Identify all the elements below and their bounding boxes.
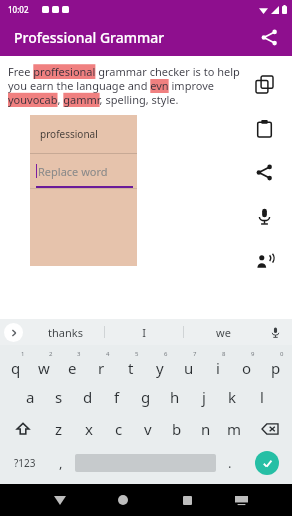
button[interactable]: Copy bbox=[242, 62, 286, 106]
staticText: k bbox=[228, 387, 237, 407]
button[interactable]: s bbox=[44, 381, 73, 413]
button[interactable]: Paste bbox=[242, 106, 286, 150]
button[interactable]: f bbox=[102, 381, 131, 413]
staticText: y bbox=[156, 358, 164, 378]
button[interactable]: Share bbox=[242, 150, 286, 194]
button[interactable]: 5 bbox=[116, 349, 145, 381]
button[interactable]: Back bbox=[28, 484, 91, 516]
staticText: i bbox=[216, 358, 220, 378]
button[interactable]: Voice input bbox=[242, 194, 286, 238]
button[interactable]: professional bbox=[30, 115, 137, 153]
staticText: Replace word bbox=[38, 164, 108, 179]
staticText: t bbox=[128, 358, 134, 378]
staticText: l bbox=[260, 387, 264, 407]
staticText: o bbox=[242, 358, 252, 378]
button[interactable]: x bbox=[74, 413, 104, 445]
staticText: p bbox=[271, 358, 281, 378]
staticText: q bbox=[11, 358, 21, 378]
button[interactable]: b bbox=[162, 413, 191, 445]
button[interactable]: Speak text bbox=[242, 238, 286, 282]
button[interactable]: More suggestions bbox=[4, 323, 23, 342]
staticText: , bbox=[59, 454, 63, 472]
staticText: 8 bbox=[222, 350, 226, 358]
button[interactable]: 4 bbox=[87, 349, 116, 381]
staticText: 4 bbox=[106, 350, 110, 358]
staticText: thanks bbox=[48, 325, 83, 340]
button[interactable]: n bbox=[191, 413, 220, 445]
staticText: g bbox=[141, 387, 151, 407]
button[interactable]: k bbox=[218, 381, 247, 413]
staticText: ?123 bbox=[14, 456, 36, 470]
button[interactable]: Recent apps bbox=[155, 484, 219, 516]
button[interactable]: 1 bbox=[2, 349, 30, 381]
staticText: Professional Grammar bbox=[14, 28, 165, 47]
button[interactable]: Home bbox=[91, 484, 155, 516]
button[interactable]: h bbox=[160, 381, 189, 413]
button[interactable]: I bbox=[105, 319, 183, 345]
staticText: s bbox=[55, 387, 63, 407]
button[interactable]: m bbox=[220, 413, 249, 445]
staticText: professional bbox=[40, 127, 98, 141]
button[interactable]: l bbox=[247, 381, 276, 413]
staticText: we bbox=[216, 325, 231, 340]
button[interactable]: 7 bbox=[174, 349, 203, 381]
staticText: w bbox=[38, 358, 50, 378]
button[interactable]: z bbox=[44, 413, 74, 445]
button[interactable]: Switch keyboard bbox=[219, 484, 264, 516]
button[interactable]: 0 bbox=[261, 349, 290, 381]
staticText: I bbox=[142, 325, 146, 340]
staticText: e bbox=[68, 358, 77, 378]
staticText: Free proffesional grammar checker is to … bbox=[8, 64, 242, 107]
staticText: 0 bbox=[280, 350, 284, 358]
staticText: 10:02 bbox=[8, 4, 29, 15]
button[interactable]: Backspace bbox=[249, 413, 290, 445]
staticText: v bbox=[144, 419, 152, 439]
staticText: x bbox=[85, 419, 93, 439]
button[interactable]: Replace word bbox=[30, 154, 137, 188]
staticText: j bbox=[202, 387, 206, 407]
button[interactable]: g bbox=[131, 381, 160, 413]
staticText: z bbox=[55, 419, 63, 439]
button[interactable]: Share bbox=[254, 22, 284, 52]
staticText: 3 bbox=[77, 350, 81, 358]
staticText: 9 bbox=[251, 350, 255, 358]
staticText: 6 bbox=[164, 350, 168, 358]
button[interactable]: c bbox=[104, 413, 133, 445]
staticText: 5 bbox=[135, 350, 139, 358]
button[interactable]: Voice typing bbox=[264, 321, 286, 343]
button[interactable]: ?123 bbox=[2, 445, 47, 481]
staticText: . bbox=[228, 454, 232, 472]
button[interactable]: 9 bbox=[232, 349, 261, 381]
button[interactable]: we bbox=[184, 319, 262, 345]
button[interactable]: Enter bbox=[255, 451, 279, 475]
button[interactable]: 2 bbox=[30, 349, 58, 381]
staticText: r bbox=[98, 358, 105, 378]
staticText: u bbox=[184, 358, 194, 378]
button[interactable]: 3 bbox=[58, 349, 87, 381]
staticText: f bbox=[114, 387, 120, 407]
staticText: 1 bbox=[21, 350, 25, 358]
staticText: a bbox=[26, 387, 35, 407]
staticText: d bbox=[83, 387, 93, 407]
staticText: c bbox=[115, 419, 123, 439]
button[interactable]: 6 bbox=[145, 349, 174, 381]
button[interactable]: j bbox=[189, 381, 218, 413]
button[interactable]: . bbox=[216, 445, 244, 481]
button[interactable]: , bbox=[47, 445, 75, 481]
button[interactable]: v bbox=[133, 413, 162, 445]
button[interactable]: d bbox=[73, 381, 102, 413]
staticText: m bbox=[227, 419, 242, 439]
staticText: b bbox=[172, 419, 182, 439]
staticText: n bbox=[201, 419, 211, 439]
staticText: 2 bbox=[49, 350, 53, 358]
button[interactable]: thanks bbox=[26, 319, 104, 345]
button[interactable]: a bbox=[16, 381, 44, 413]
button[interactable]: 8 bbox=[203, 349, 232, 381]
staticText: h bbox=[170, 387, 180, 407]
button[interactable]: Shift bbox=[2, 413, 44, 445]
staticText: 7 bbox=[193, 350, 197, 358]
